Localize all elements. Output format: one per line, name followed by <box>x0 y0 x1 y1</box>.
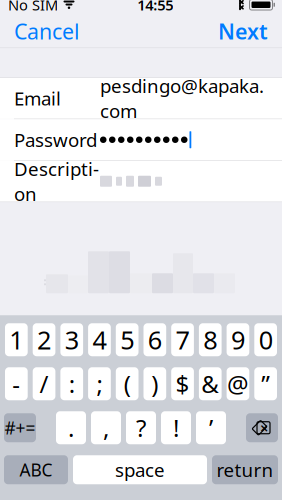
staticText: Password <box>14 127 97 152</box>
button[interactable]: ! <box>161 411 191 444</box>
button[interactable]: 5 <box>116 323 138 356</box>
button[interactable]: . <box>56 411 86 444</box>
staticText: 3 <box>65 323 79 356</box>
staticText: ( <box>124 368 131 400</box>
button[interactable]: ? <box>126 411 156 444</box>
staticText: Description <box>14 156 99 206</box>
button[interactable]: ” <box>254 367 277 400</box>
staticText: return <box>216 457 273 482</box>
staticText: No SIM <box>8 0 58 14</box>
button[interactable]: : <box>60 367 83 400</box>
staticText: ; <box>96 368 102 400</box>
staticText: Cancel <box>14 17 80 45</box>
button[interactable]: 6 <box>143 323 166 356</box>
button[interactable]: ABC <box>4 455 68 484</box>
staticText: ? <box>136 412 146 444</box>
button[interactable]: Cancel <box>0 15 94 48</box>
button[interactable]: 8 <box>199 323 222 356</box>
button[interactable]: ; <box>88 367 111 400</box>
staticText: #+= <box>4 416 35 439</box>
staticText: 7 <box>176 323 190 356</box>
staticText: ” <box>261 368 270 400</box>
staticText: 14:55 <box>137 0 173 14</box>
button[interactable]: 0 <box>254 323 277 356</box>
button[interactable]: @ <box>227 367 249 400</box>
button[interactable]: ’ <box>196 411 226 444</box>
staticText: 2 <box>37 323 51 356</box>
button[interactable]: 2 <box>33 323 55 356</box>
staticText: : <box>69 368 75 400</box>
button[interactable]: , <box>91 411 121 444</box>
staticText: 4 <box>92 323 106 356</box>
button[interactable]: Email <box>0 78 282 119</box>
button[interactable]: Next <box>204 15 282 48</box>
staticText: 6 <box>148 323 162 356</box>
staticText: space <box>115 457 165 482</box>
staticText: ) <box>151 368 158 400</box>
staticText: / <box>40 368 49 400</box>
button[interactable]: $ <box>171 367 194 400</box>
staticText: . <box>68 412 74 444</box>
staticText: Email <box>14 86 61 111</box>
staticText: pesdingo@kapaka.com <box>100 73 264 123</box>
staticText: $ <box>176 368 190 400</box>
staticText: 8 <box>203 323 217 356</box>
button[interactable]: 7 <box>171 323 194 356</box>
button[interactable]: ( <box>116 367 138 400</box>
staticText: ABC <box>19 458 52 481</box>
staticText: ! <box>173 412 179 444</box>
staticText: & <box>201 368 219 400</box>
button[interactable]: Delete <box>246 413 278 442</box>
button[interactable]: Description <box>0 161 282 202</box>
button[interactable]: / <box>33 367 55 400</box>
button[interactable]: space <box>73 455 207 484</box>
button[interactable]: 4 <box>88 323 111 356</box>
staticText: ’ <box>209 412 213 444</box>
button[interactable]: 3 <box>60 323 83 356</box>
button[interactable]: & <box>199 367 222 400</box>
button[interactable]: #+= <box>4 413 36 442</box>
button[interactable]: - <box>5 367 28 400</box>
staticText: 1 <box>9 323 23 356</box>
staticText: 5 <box>120 323 134 356</box>
button[interactable]: 9 <box>227 323 249 356</box>
staticText: @ <box>227 368 249 400</box>
staticText: × <box>260 418 268 437</box>
staticText: , <box>103 412 109 444</box>
button[interactable]: return <box>212 455 278 484</box>
button[interactable]: 1 <box>5 323 28 356</box>
button[interactable]: ) <box>143 367 166 400</box>
button[interactable]: Password <box>0 119 282 160</box>
staticText: - <box>12 368 20 400</box>
staticText: 9 <box>231 323 245 356</box>
staticText: 0 <box>259 323 273 356</box>
staticText: Next <box>218 17 268 45</box>
